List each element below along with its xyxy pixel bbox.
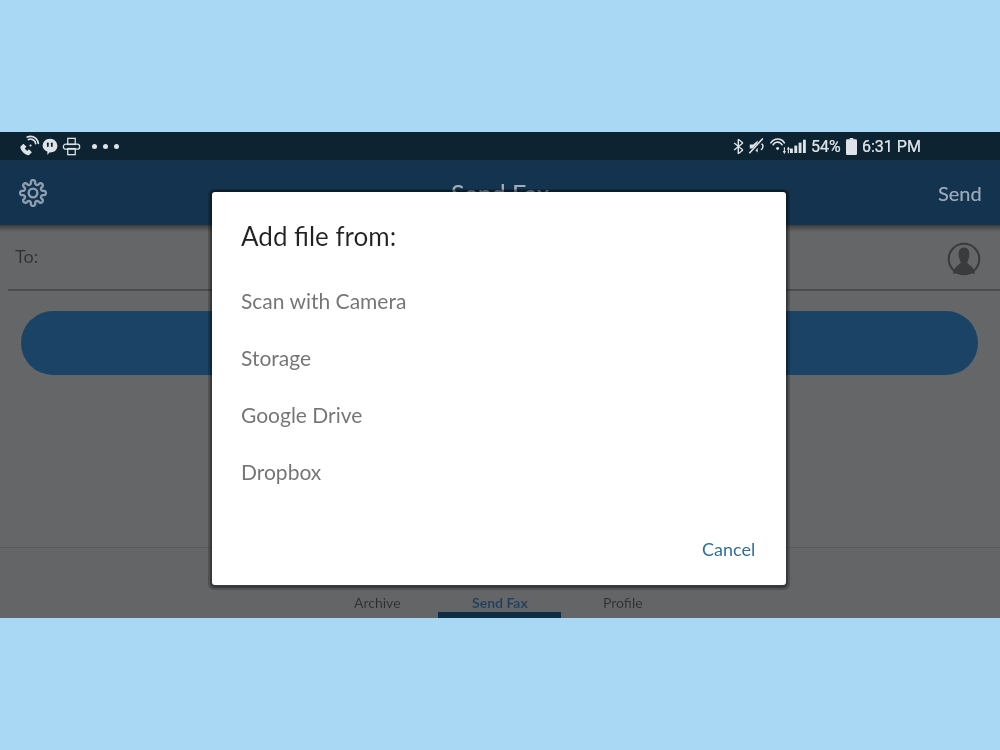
staticText: Profile [603, 594, 643, 611]
staticText: Send [938, 181, 982, 205]
button[interactable]: Storage [212, 335, 786, 379]
staticText: 6:31 PM [862, 137, 921, 156]
button[interactable]: Choose contact [940, 235, 988, 283]
staticText: To: [15, 245, 39, 267]
staticText: Dropbox [241, 459, 322, 484]
button[interactable]: Dropbox [212, 449, 786, 493]
button[interactable]: Settings [10, 170, 56, 216]
staticText: Add file from: [241, 220, 397, 251]
staticText: Archive [354, 594, 401, 611]
staticText: Scan with Camera [241, 288, 407, 313]
button[interactable]: Add file [21, 311, 978, 375]
staticText: Send Fax [451, 178, 550, 208]
staticText: Storage [241, 345, 312, 370]
staticText: Send Fax [472, 594, 528, 611]
button[interactable]: Send Fax [438, 547, 561, 618]
button[interactable]: Google Drive [212, 392, 786, 436]
staticText: Google Drive [241, 402, 363, 427]
staticText: 54% [811, 137, 841, 156]
button[interactable]: Profile [561, 547, 684, 618]
button[interactable]: Send [924, 171, 996, 215]
button[interactable]: Scan with Camera [212, 278, 786, 322]
staticText: Cancel [702, 538, 756, 560]
button[interactable]: Cancel [688, 528, 770, 570]
button[interactable]: Archive [316, 547, 438, 618]
